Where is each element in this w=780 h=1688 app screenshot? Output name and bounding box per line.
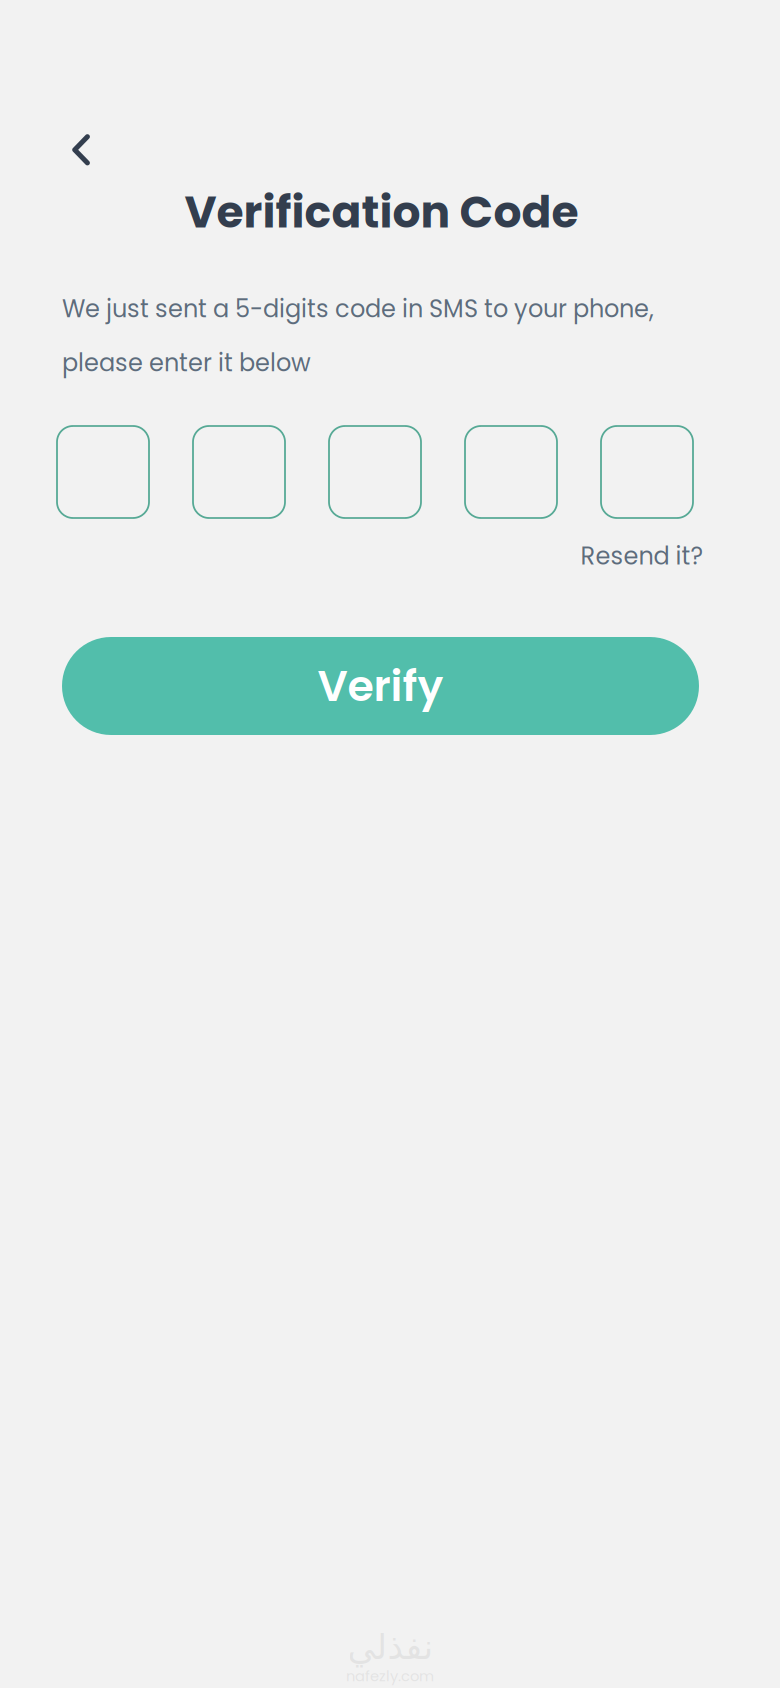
staticText: We just sent a 5-digits code in SMS to y…	[62, 292, 654, 326]
staticText: Verification Code	[184, 181, 578, 243]
button[interactable]: Code digit	[57, 426, 149, 518]
button[interactable]: Code digit	[465, 426, 557, 518]
staticText: please enter it below	[62, 346, 311, 380]
button[interactable]: Code digit	[193, 426, 285, 518]
button[interactable]: Code digit	[329, 426, 421, 518]
button[interactable]: Code digit	[601, 426, 693, 518]
staticText: Resend it?	[580, 539, 703, 573]
staticText: نفذلي	[347, 1627, 433, 1667]
staticText: Verify	[317, 656, 443, 716]
button[interactable]: Verify	[62, 637, 699, 735]
staticText: nafezly.com	[346, 1666, 434, 1686]
button[interactable]: Back	[50, 119, 112, 181]
button[interactable]: Resend it?	[580, 539, 704, 573]
